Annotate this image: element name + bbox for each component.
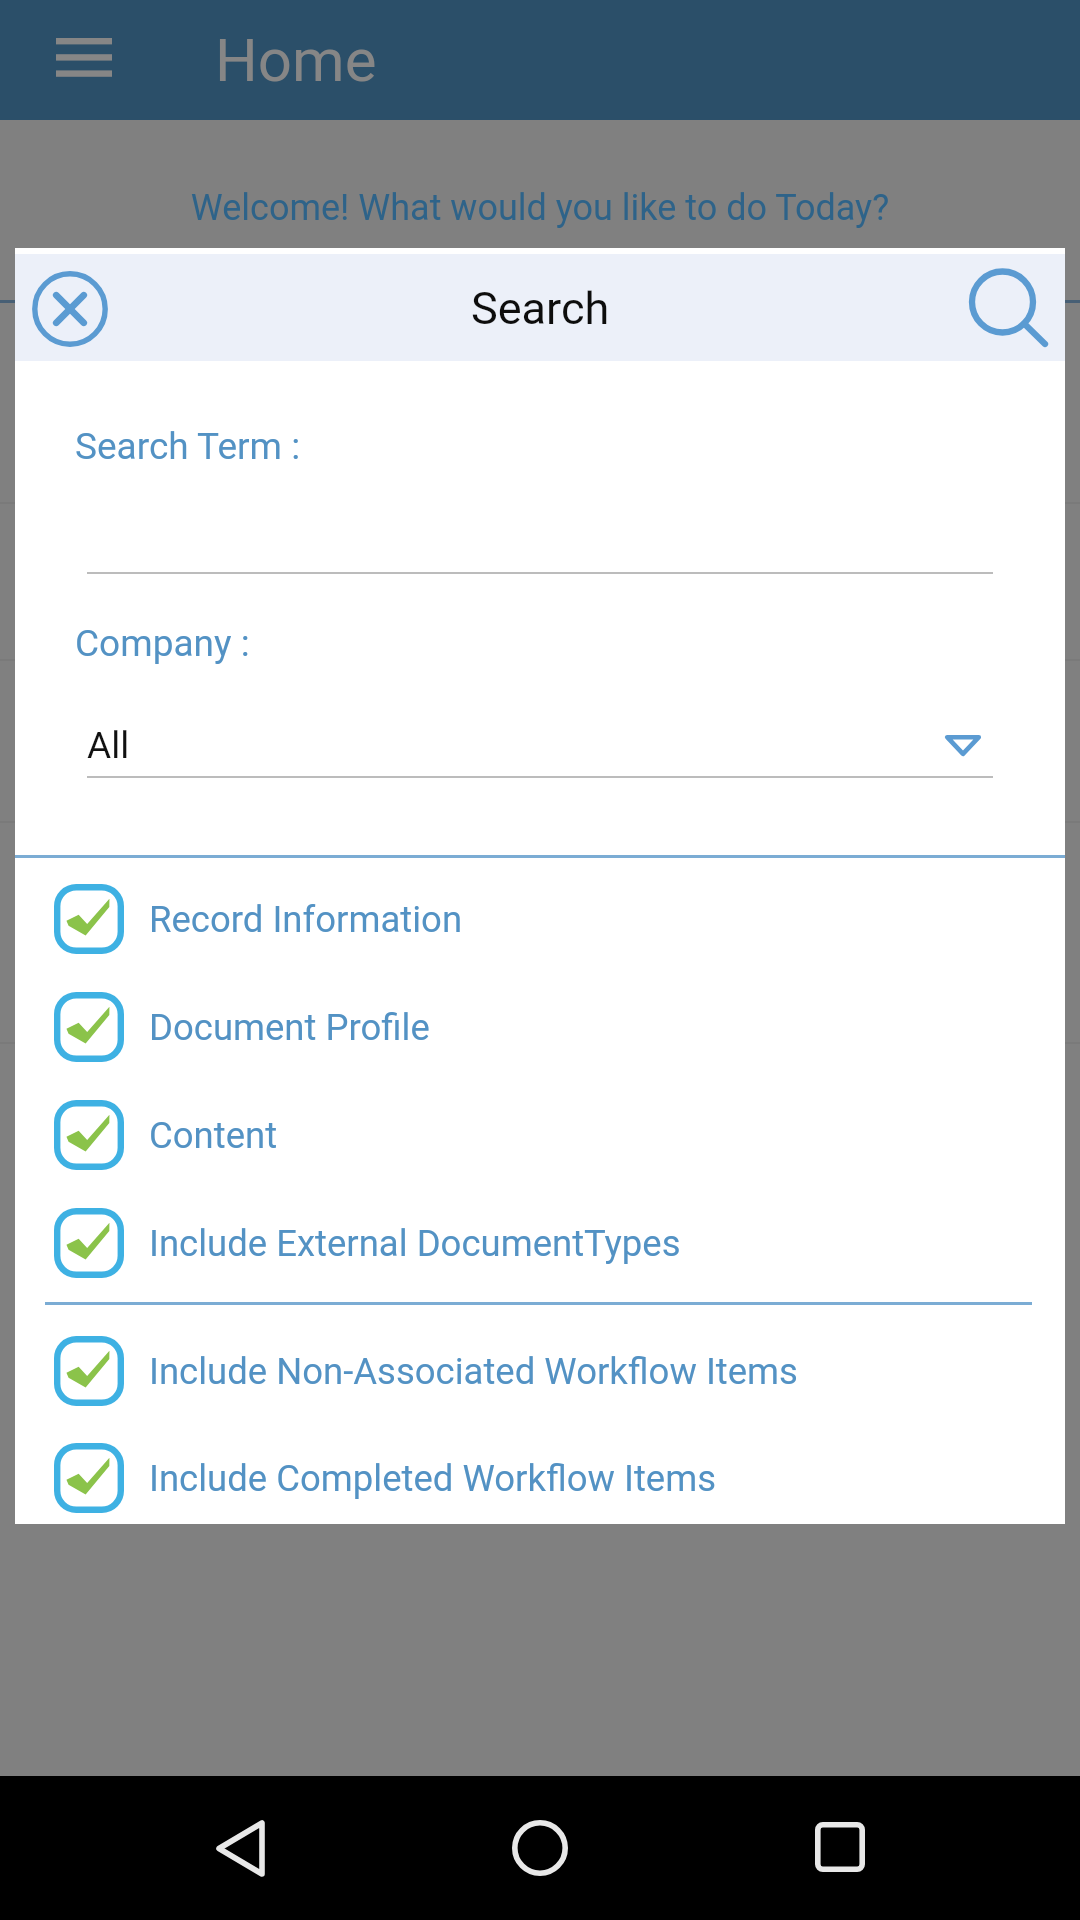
button[interactable]: Include Completed Workflow Items	[15, 1424, 1065, 1532]
button[interactable]: Recent apps	[780, 1791, 900, 1903]
button[interactable]: Record Information	[15, 865, 1065, 973]
staticText: Content	[149, 1114, 278, 1157]
button[interactable]: Content	[15, 1081, 1065, 1189]
button[interactable]: Back	[180, 1792, 300, 1904]
button[interactable]: All	[87, 714, 993, 776]
button[interactable]: Search	[950, 248, 1060, 355]
staticText: Home	[215, 25, 377, 95]
staticText: Include Completed Workflow Items	[149, 1457, 717, 1500]
button[interactable]: Include External DocumentTypes	[15, 1189, 1065, 1297]
button[interactable]: Home	[480, 1792, 600, 1904]
staticText: Welcome! What would you like to do Today…	[0, 187, 1080, 229]
button[interactable]: Search term input	[87, 502, 993, 574]
staticText: Record Information	[149, 898, 463, 941]
staticText: Search Term :	[75, 425, 301, 468]
button[interactable]: Open navigation menu	[26, 0, 142, 120]
staticText: Include External DocumentTypes	[149, 1222, 681, 1265]
staticText: All	[87, 724, 130, 767]
button[interactable]: Document Profile	[15, 973, 1065, 1081]
staticText: Search	[471, 282, 610, 335]
staticText: Include Non-Associated Workflow Items	[149, 1350, 798, 1393]
staticText: Company :	[75, 622, 250, 665]
button[interactable]: Include Non-Associated Workflow Items	[15, 1317, 1065, 1425]
button[interactable]: Close	[19, 258, 120, 359]
staticText: Document Profile	[149, 1006, 430, 1049]
